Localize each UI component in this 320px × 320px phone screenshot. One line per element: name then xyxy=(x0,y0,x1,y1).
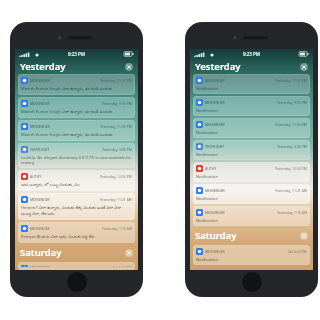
button[interactable]: MESSENGER xyxy=(193,118,310,138)
staticText: Yesterday, 1:15 AM xyxy=(277,210,307,215)
button[interactable]: TESTFLIGHT xyxy=(18,143,135,168)
button[interactable]: Clear Yesterday notifications xyxy=(125,63,133,71)
staticText: Notification xyxy=(196,174,218,179)
button[interactable]: AUTHY xyxy=(18,170,135,191)
button[interactable]: Clear Saturday notifications xyxy=(125,249,133,257)
staticText: AUTHY xyxy=(205,166,217,171)
button[interactable]: Home button xyxy=(67,272,87,292)
staticText: Manish Kumar Singh: ఎలా ఉన్నారు, చూడండి … xyxy=(21,86,113,92)
staticText: MESSENGER xyxy=(205,249,225,254)
staticText: Yesterday, 3:00 PM xyxy=(277,144,307,149)
staticText: MESSENGER xyxy=(205,78,225,83)
staticText: Notification xyxy=(196,257,218,262)
staticText: Yesterday, 11:50 PM xyxy=(100,124,132,129)
button[interactable]: MESSENGER xyxy=(193,74,310,94)
staticText: Yesterday, 11:50 PM xyxy=(275,122,307,127)
staticText: అను అన్నాను, లో లుబ్బ ఎందుకు, ఎల xyxy=(21,182,80,188)
button[interactable]: MESSENGER xyxy=(193,184,310,204)
button[interactable]: MESSENGER xyxy=(193,245,310,265)
staticText: Sat 6:22 PM xyxy=(288,249,307,254)
staticText: MESSENGER xyxy=(30,78,50,83)
staticText: MESSENGER xyxy=(205,188,225,193)
button[interactable]: TESTFLIGHT xyxy=(193,140,310,160)
staticText: Manish Kumar Singh: ఎలా ఉన్నారు, చూడండి … xyxy=(21,132,113,138)
staticText: Saturday xyxy=(20,246,62,259)
staticText: Notification xyxy=(196,152,218,157)
button[interactable]: MESSENGER xyxy=(193,96,310,116)
staticText: Yesterday xyxy=(195,60,241,73)
staticText: Yesterday, 11:37 PM xyxy=(275,78,307,83)
staticText: MESSENGER xyxy=(30,124,50,129)
staticText: Yesterday, 9:50 PM xyxy=(102,101,132,106)
staticText: Ramyas Bhatia: ఎలా అను, ఎందుకు పెద్ద లేద xyxy=(21,234,95,240)
staticText: AUTHY xyxy=(30,174,42,179)
staticText: Yesterday, 1:15 AM xyxy=(102,226,132,231)
staticText: Notification xyxy=(196,108,218,113)
button[interactable]: MESSENGER xyxy=(18,222,135,243)
staticText: MESSENGER xyxy=(30,226,50,231)
staticText: Yesterday, 12:54 PM xyxy=(275,166,307,171)
button[interactable]: MESSENGER xyxy=(18,262,135,270)
staticText: Yesterday, 11:21 AM xyxy=(100,197,132,202)
button[interactable]: MESSENGER xyxy=(18,97,135,118)
button[interactable]: AUTHY xyxy=(193,162,310,182)
button[interactable]: MESSENGER xyxy=(18,74,135,95)
staticText: Yesterday, 3:00 PM xyxy=(102,147,132,152)
staticText: Saturday xyxy=(195,229,237,242)
staticText: MESSENGER xyxy=(30,101,50,106)
button[interactable]: MESSENGER xyxy=(18,120,135,141)
staticText: MESSENGER xyxy=(205,210,225,215)
staticText: Yesterday, 9:50 PM xyxy=(277,100,307,105)
button[interactable]: Clear Yesterday notifications xyxy=(300,63,308,71)
staticText: Notification xyxy=(196,86,218,91)
staticText: LookUp: An elegant dictionary 4.0 (173) … xyxy=(21,155,132,165)
staticText: Notification xyxy=(196,218,218,223)
staticText: MESSENGER xyxy=(30,197,50,202)
staticText: 9:23 PM xyxy=(68,51,85,57)
staticText: TESTFLIGHT xyxy=(30,147,50,152)
staticText: Notification xyxy=(196,130,218,135)
staticText: MESSENGER xyxy=(205,122,225,127)
staticText: Yesterday, 11:21 AM xyxy=(275,188,307,193)
staticText: MESSENGER xyxy=(30,265,50,267)
button[interactable]: Clear Saturday notifications xyxy=(300,232,308,240)
staticText: Yesterday xyxy=(20,60,66,73)
staticText: MESSENGER xyxy=(205,100,225,105)
staticText: Hmmm?! ఎలా ఉన్నారు, ఎందుకు లేక్క ఎందుకు … xyxy=(21,205,132,217)
button[interactable]: Home button xyxy=(242,272,262,292)
staticText: Yesterday, 11:37 PM xyxy=(100,78,132,83)
staticText: TESTFLIGHT xyxy=(205,144,225,149)
button[interactable]: MESSENGER xyxy=(193,206,310,226)
button[interactable]: MESSENGER xyxy=(18,193,135,220)
staticText: Yesterday, 12:54 PM xyxy=(100,174,132,179)
staticText: 9:23 PM xyxy=(243,51,260,57)
staticText: Notification xyxy=(196,196,218,201)
staticText: Manish Kumar Singh: ఎలా ఉన్నారు, చూడండి … xyxy=(21,109,113,115)
staticText: Sat 6:22 PM xyxy=(113,265,132,267)
